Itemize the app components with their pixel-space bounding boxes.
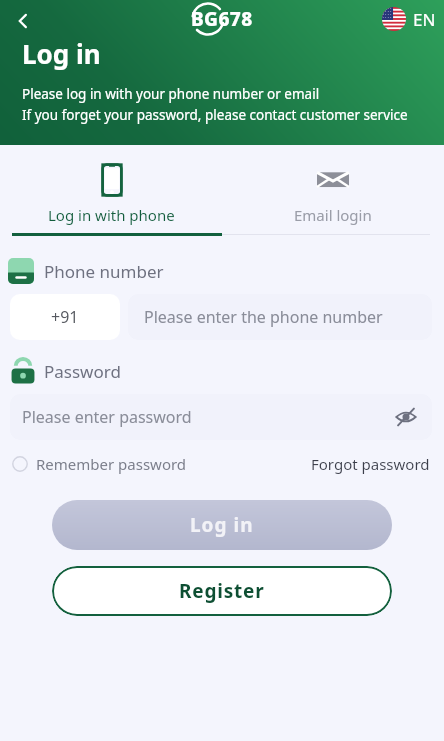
staticText: EN	[413, 8, 436, 31]
button[interactable]: Remember password	[12, 454, 187, 474]
staticText: BG678	[191, 6, 253, 32]
staticText: If you forget your password, please cont…	[22, 106, 408, 124]
button[interactable]: Language: English	[382, 2, 436, 36]
staticText: +91	[51, 306, 79, 328]
staticText: Please enter password	[22, 406, 192, 428]
staticText: Email login	[294, 205, 372, 225]
button[interactable]: Register	[52, 566, 392, 616]
button[interactable]: Please enter the phone number	[128, 294, 432, 340]
button[interactable]: Log in	[52, 500, 392, 550]
staticText: Log in	[190, 512, 254, 538]
button[interactable]: +91	[10, 294, 120, 340]
staticText: Log in	[22, 36, 101, 71]
button[interactable]: Email login	[222, 155, 444, 233]
staticText: Register	[179, 578, 265, 604]
button[interactable]: Back	[4, 2, 42, 40]
button[interactable]: Log in with phone	[0, 155, 222, 233]
button[interactable]: Show password	[392, 403, 420, 431]
staticText: Log in with phone	[48, 205, 175, 225]
staticText: Please enter the phone number	[144, 306, 383, 328]
staticText: Remember password	[36, 454, 187, 474]
staticText: Password	[44, 360, 121, 383]
staticText: Phone number	[44, 260, 164, 283]
staticText: Forgot password	[311, 454, 430, 474]
staticText: Please log in with your phone number or …	[22, 85, 320, 103]
other: Language: English	[382, 7, 406, 31]
button[interactable]: Forgot password	[311, 454, 430, 474]
button[interactable]: Please enter password	[10, 394, 432, 440]
